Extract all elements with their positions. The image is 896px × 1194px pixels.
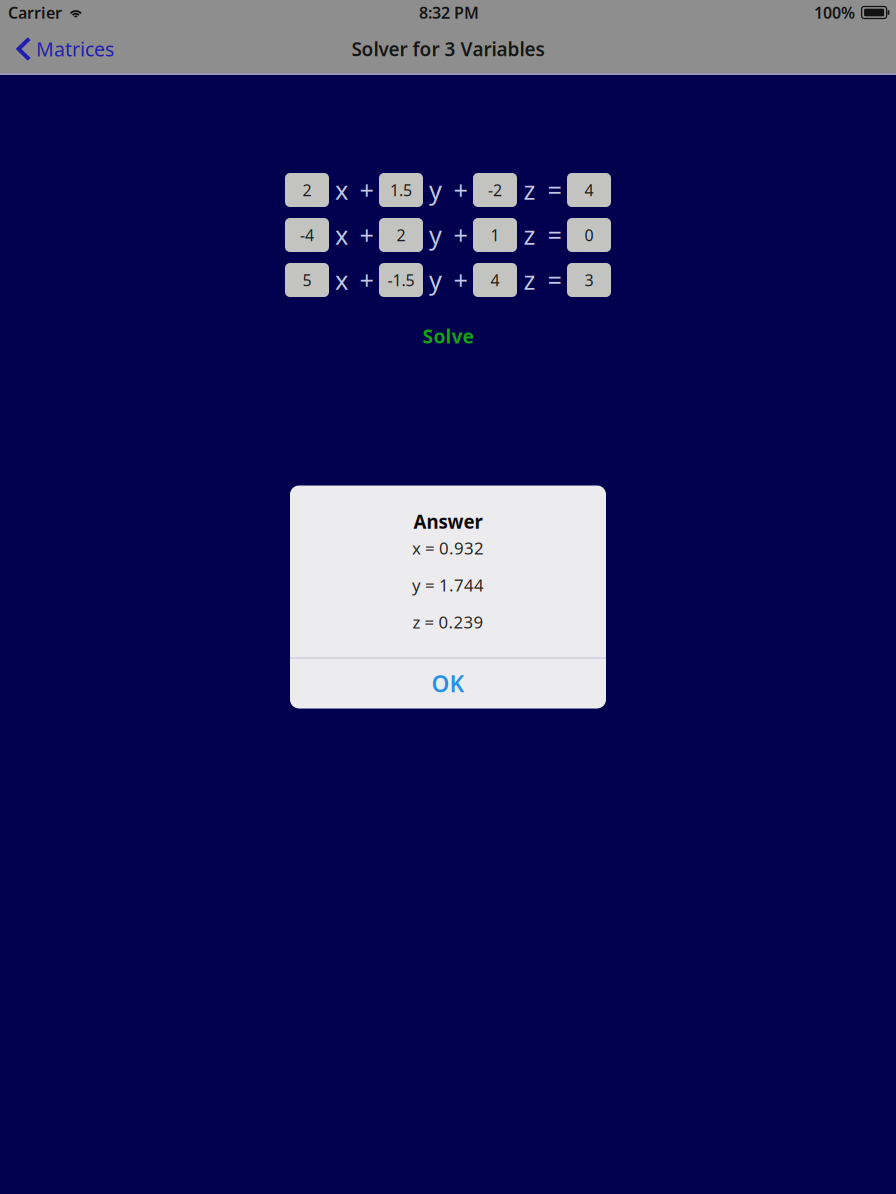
staticText: Answer bbox=[413, 509, 482, 534]
staticText: z bbox=[523, 218, 535, 252]
staticText: 3 bbox=[584, 269, 593, 291]
button[interactable]: Coefficient 3 bbox=[567, 263, 611, 297]
staticText: z bbox=[523, 263, 535, 297]
button[interactable]: Coefficient 4 bbox=[567, 173, 611, 207]
staticText: + bbox=[359, 218, 373, 252]
staticText: 2 bbox=[302, 179, 311, 201]
staticText: x bbox=[335, 173, 348, 207]
staticText: 100% bbox=[814, 2, 855, 23]
staticText: -2 bbox=[488, 179, 502, 201]
staticText: x bbox=[335, 218, 348, 252]
button[interactable]: Coefficient 1 bbox=[473, 218, 517, 252]
button[interactable]: Coefficient 2 bbox=[285, 173, 329, 207]
staticText: y bbox=[429, 263, 442, 297]
staticText: Solve bbox=[422, 323, 473, 349]
staticText: y bbox=[429, 173, 442, 207]
staticText: y bbox=[429, 218, 442, 252]
staticText: 0 bbox=[584, 224, 593, 246]
staticText: 5 bbox=[302, 269, 311, 291]
staticText: + bbox=[359, 173, 373, 207]
button[interactable]: Solve bbox=[406, 316, 489, 356]
staticText: x = 0.932 bbox=[412, 537, 484, 559]
staticText: z = 0.239 bbox=[412, 611, 483, 633]
staticText: x bbox=[335, 263, 348, 297]
staticText: 2 bbox=[396, 224, 405, 246]
staticText: + bbox=[453, 263, 467, 297]
staticText: -4 bbox=[300, 224, 314, 246]
button[interactable]: Matrices bbox=[0, 29, 124, 69]
staticText: = bbox=[547, 263, 561, 297]
button[interactable]: Coefficient -1.5 bbox=[379, 263, 423, 297]
staticText: + bbox=[453, 218, 467, 252]
button[interactable]: Coefficient -2 bbox=[473, 173, 517, 207]
button[interactable]: Coefficient 0 bbox=[567, 218, 611, 252]
staticText: + bbox=[359, 263, 373, 297]
button[interactable]: Coefficient 4 bbox=[473, 263, 517, 297]
staticText: y = 1.744 bbox=[412, 574, 484, 596]
staticText: = bbox=[547, 173, 561, 207]
staticText: OK bbox=[431, 668, 464, 698]
button[interactable]: Coefficient 1.5 bbox=[379, 173, 423, 207]
staticText: = bbox=[547, 218, 561, 252]
button[interactable]: Coefficient -4 bbox=[285, 218, 329, 252]
button[interactable]: OK bbox=[290, 658, 606, 708]
staticText: Carrier bbox=[8, 2, 62, 23]
staticText: Matrices bbox=[36, 36, 114, 62]
staticText: 1.5 bbox=[390, 179, 412, 201]
staticText: -1.5 bbox=[387, 269, 414, 291]
staticText: + bbox=[453, 173, 467, 207]
staticText: 1 bbox=[490, 224, 499, 246]
button[interactable]: Coefficient 5 bbox=[285, 263, 329, 297]
staticText: 8:32 PM bbox=[419, 2, 479, 23]
staticText: Solver for 3 Variables bbox=[351, 36, 544, 62]
staticText: z bbox=[523, 173, 535, 207]
staticText: 4 bbox=[490, 269, 499, 291]
staticText: 4 bbox=[584, 179, 593, 201]
button[interactable]: Coefficient 2 bbox=[379, 218, 423, 252]
